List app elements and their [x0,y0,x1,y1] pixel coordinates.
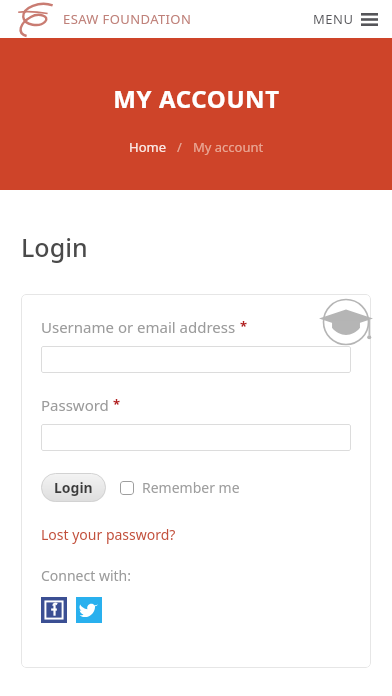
button[interactable]: Login [41,473,106,502]
staticText: Remember me [142,478,240,497]
button[interactable]: Facebook [41,597,67,623]
staticText: Login [21,230,88,264]
button[interactable]: Home [129,138,166,156]
staticText: Connect with: [41,566,132,585]
staticText: My account [193,138,264,156]
button[interactable]: Twitter [76,597,102,623]
button[interactable]: Remember me [120,478,240,497]
button[interactable]: Lost your password? [41,525,176,544]
staticText: * [240,317,248,335]
button[interactable]: Menu [309,6,382,32]
button[interactable] [41,346,351,373]
staticText: Username or email address [41,317,236,337]
staticText: ESAW FOUNDATION [63,10,192,28]
staticText: MENU [313,10,354,28]
staticText: / [177,138,182,156]
staticText: * [113,395,121,413]
staticText: MY ACCOUNT [113,82,280,115]
staticText: Password [41,395,109,415]
button[interactable] [41,424,351,451]
staticText: Login [54,478,93,497]
